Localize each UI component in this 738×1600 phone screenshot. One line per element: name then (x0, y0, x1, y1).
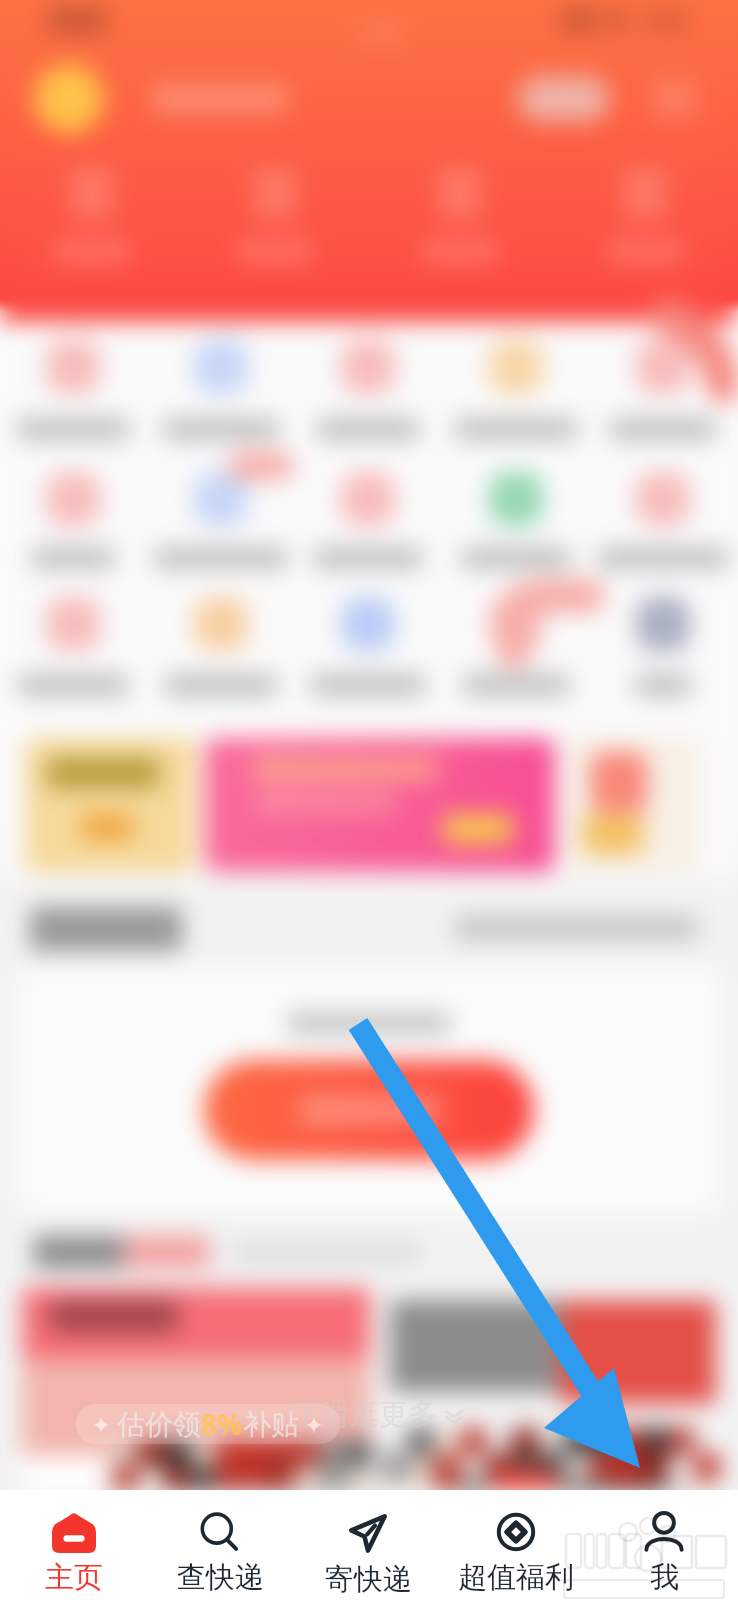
button[interactable]: ✦ (92, 1404, 324, 1444)
button[interactable]: 寄快递 (294, 1490, 442, 1600)
staticText: ✦ (299, 1409, 324, 1439)
staticText: 我 (650, 1559, 679, 1596)
staticText: 主页 (45, 1559, 103, 1596)
staticText: 寄快递 (325, 1561, 412, 1598)
button[interactable]: 超值福利 (442, 1490, 590, 1600)
staticText: 查快递 (177, 1559, 264, 1596)
staticText: 估价领 (117, 1407, 201, 1442)
button[interactable]: 查快递 (147, 1490, 294, 1600)
button[interactable]: 下滑逛更多 (292, 1396, 464, 1433)
staticText: 8% (201, 1405, 243, 1443)
staticText: ✦ (92, 1409, 117, 1439)
button[interactable]: 主页 (0, 1490, 147, 1600)
staticText: 下滑逛更多 (292, 1396, 437, 1433)
button[interactable]: 我 (590, 1490, 738, 1600)
staticText: 超值福利 (458, 1559, 574, 1596)
staticText: 补贴 (243, 1407, 299, 1442)
